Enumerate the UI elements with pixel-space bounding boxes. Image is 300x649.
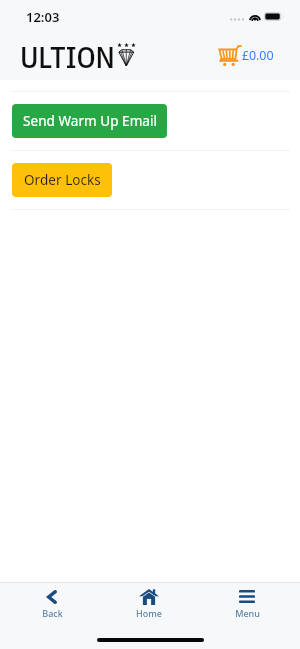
button[interactable]: Send Warm Up Email <box>12 104 167 138</box>
other: Basket <box>219 45 241 66</box>
staticText: Back <box>42 607 63 619</box>
button[interactable]: Home <box>119 583 179 620</box>
button[interactable]: Basket <box>219 44 274 66</box>
staticText: Order Locks <box>24 171 101 189</box>
staticText: ULTION <box>20 37 115 69</box>
staticText: Send Warm Up Email <box>23 112 157 130</box>
other: Home <box>139 589 159 605</box>
other: Back <box>47 590 57 604</box>
staticText: Home <box>136 607 162 619</box>
staticText: 12:03 <box>26 8 60 26</box>
other: Menu <box>239 590 255 603</box>
button[interactable]: Menu <box>217 583 277 620</box>
button[interactable]: Back <box>22 583 82 620</box>
staticText: £0.00 <box>242 47 274 64</box>
button[interactable]: Order Locks <box>12 163 112 197</box>
staticText: Menu <box>235 607 260 619</box>
